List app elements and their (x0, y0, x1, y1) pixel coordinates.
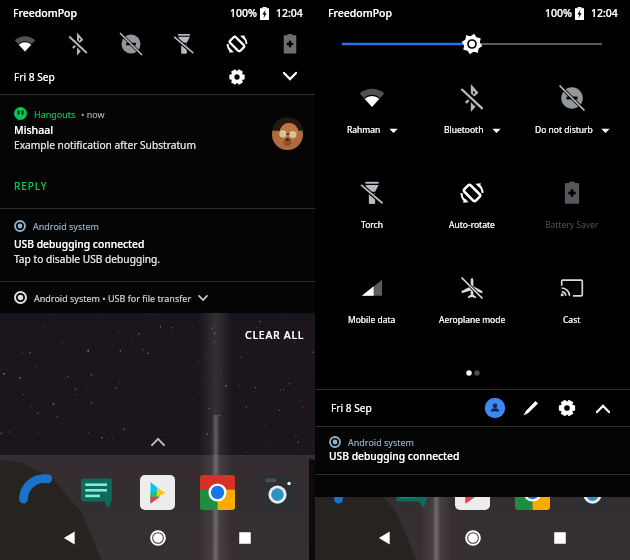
staticText: Tap to disable USB debugging. (14, 252, 161, 266)
button[interactable]: Do not disturb (522, 71, 622, 166)
staticText: Example notification after Substratum (14, 138, 196, 152)
staticText: 12:04 (591, 6, 618, 20)
staticText: Do not disturb (535, 124, 593, 136)
staticText: Fri 8 Sep (14, 70, 55, 84)
button[interactable]: Rahman (322, 71, 422, 166)
button[interactable]: Hangouts (0, 95, 315, 208)
button[interactable]: Android system (0, 209, 315, 281)
button[interactable]: Messages (80, 475, 115, 510)
button[interactable]: Auto-rotate (422, 166, 522, 261)
staticText: CLEAR ALL (245, 328, 305, 342)
staticText: Android system (348, 436, 414, 448)
staticText: 100% (545, 6, 572, 20)
staticText: USB debugging connected (329, 449, 460, 463)
staticText: FreedomPop (328, 6, 393, 20)
staticText: Mishaal (14, 123, 54, 137)
staticText: • now (81, 108, 105, 120)
staticText: Bluetooth (444, 124, 484, 136)
button[interactable]: Android system • USB for file transfer (0, 282, 315, 313)
staticText: Battery Saver (545, 219, 599, 231)
button[interactable]: User (481, 394, 509, 422)
button[interactable]: Settings (553, 394, 581, 422)
staticText: Mobile data (348, 314, 396, 326)
staticText: Torch (361, 219, 383, 231)
staticText: FreedomPop (13, 6, 78, 20)
staticText: Fri 8 Sep (331, 401, 372, 415)
button[interactable]: Settings (221, 61, 253, 93)
staticText: Rahman (347, 124, 381, 136)
button[interactable]: Chrome (515, 475, 550, 510)
staticText: USB debugging connected (14, 237, 145, 251)
button[interactable]: Edit tiles (517, 394, 545, 422)
button[interactable]: Messages (395, 475, 430, 510)
button[interactable]: Bluetooth (422, 71, 522, 166)
button[interactable]: Home (455, 520, 491, 556)
button[interactable]: Home (140, 520, 176, 556)
button[interactable]: Phone (20, 475, 55, 510)
staticText: REPLY (14, 179, 48, 193)
button[interactable]: Camera (260, 475, 295, 510)
staticText: Android system (33, 220, 99, 232)
button[interactable]: Chrome (200, 475, 235, 510)
button[interactable]: Camera (575, 475, 610, 510)
staticText: 100% (230, 6, 257, 20)
staticText: Hangouts (34, 108, 76, 120)
staticText: Auto-rotate (449, 219, 495, 231)
button[interactable]: Aeroplane mode (422, 261, 522, 356)
button[interactable]: Play Store (455, 475, 490, 510)
button[interactable]: Torch (322, 166, 422, 261)
button[interactable]: Brightness (315, 26, 630, 62)
button[interactable]: Play Store (140, 475, 175, 510)
button[interactable]: Recents (542, 520, 578, 556)
button[interactable]: Recents (227, 520, 263, 556)
button[interactable]: REPLY (14, 179, 48, 193)
staticText: Cast (563, 314, 581, 326)
button[interactable]: Mobile data (322, 261, 422, 356)
button[interactable]: Cast (522, 261, 622, 356)
button[interactable]: Collapse (589, 394, 617, 422)
staticText: Android system • USB for file transfer (34, 292, 192, 304)
staticText: 12:04 (276, 6, 303, 20)
button[interactable]: Back (52, 520, 88, 556)
staticText: Aeroplane mode (439, 314, 506, 326)
button[interactable]: Expand quick settings (274, 61, 306, 93)
button[interactable]: Android system (315, 427, 630, 474)
button[interactable]: Phone (335, 475, 370, 510)
button[interactable]: Battery Saver (522, 166, 622, 261)
button[interactable]: Back (367, 520, 403, 556)
